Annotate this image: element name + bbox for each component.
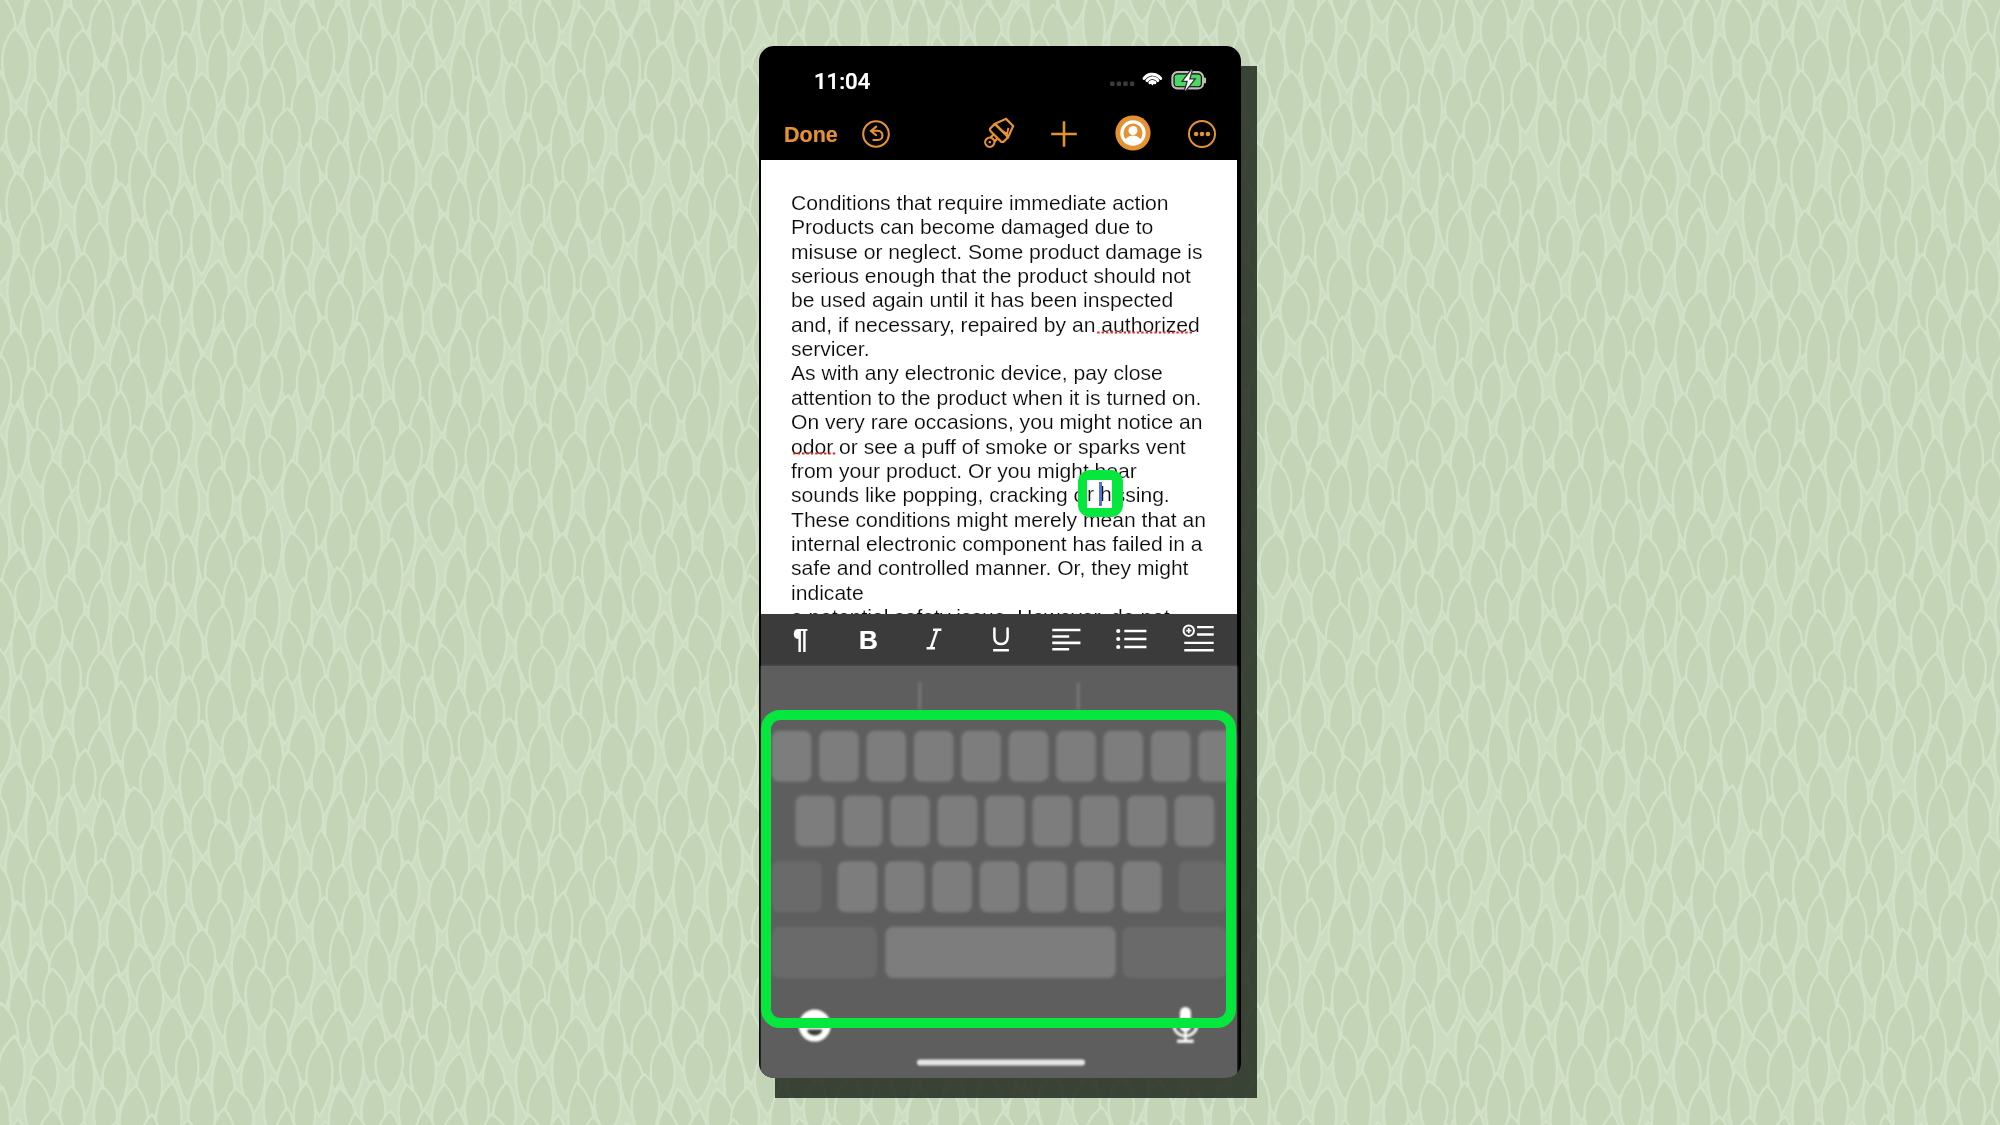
staticText: misuse or neglect. Some product damage i… xyxy=(791,240,1203,264)
staticText: As with any electronic device, pay close xyxy=(791,361,1163,385)
button[interactable]: Add xyxy=(1041,111,1087,157)
staticText: servicer. xyxy=(791,337,870,361)
staticText: be used again until it has been inspecte… xyxy=(791,288,1174,312)
staticText: indicate xyxy=(791,581,864,605)
button[interactable]: Bulleted list xyxy=(1109,616,1155,662)
staticText: attention to the product when it is turn… xyxy=(791,386,1202,410)
staticText: odor or see a puff of smoke or sparks ve… xyxy=(791,435,1186,459)
staticText: from your product. Or you might hear xyxy=(791,459,1137,483)
staticText: Conditions that require immediate action xyxy=(791,191,1169,215)
button[interactable]: Bold xyxy=(845,616,891,662)
button[interactable]: Paragraph style xyxy=(778,616,824,662)
staticText: B xyxy=(859,625,878,654)
staticText: internal electronic component has failed… xyxy=(791,532,1203,556)
staticText: a potential safety issue. However, do no… xyxy=(791,605,1170,629)
staticText: safe and controlled manner. Or, they mig… xyxy=(791,556,1189,580)
button[interactable]: Note text xyxy=(761,160,1237,614)
button[interactable]: More options xyxy=(1179,111,1225,157)
button[interactable]: Done xyxy=(784,123,838,147)
button[interactable]: Align xyxy=(1044,616,1090,662)
button[interactable]: Markup xyxy=(975,111,1021,157)
staticText: These conditions might merely mean that … xyxy=(791,508,1207,532)
staticText: serious enough that the product should n… xyxy=(791,264,1191,288)
button[interactable]: Underline xyxy=(978,616,1024,662)
staticText: 11:04 xyxy=(814,68,871,94)
staticText: and, if necessary, repaired by an author… xyxy=(791,313,1200,337)
button[interactable]: Indent xyxy=(1176,616,1222,662)
staticText: Done xyxy=(784,123,838,147)
staticText: On very rare occasions, you might notice… xyxy=(791,410,1203,434)
button[interactable]: Undo xyxy=(853,111,899,157)
staticText: r h xyxy=(1087,482,1112,506)
staticText: sounds like popping, cracking or hissing… xyxy=(791,483,1170,507)
button[interactable]: Account xyxy=(1110,110,1156,156)
button[interactable]: Italic xyxy=(911,616,957,662)
staticText: ¶ xyxy=(793,624,809,654)
staticText: Products can become damaged due to xyxy=(791,215,1154,239)
button[interactable]: Keyboard xyxy=(761,710,1236,1028)
